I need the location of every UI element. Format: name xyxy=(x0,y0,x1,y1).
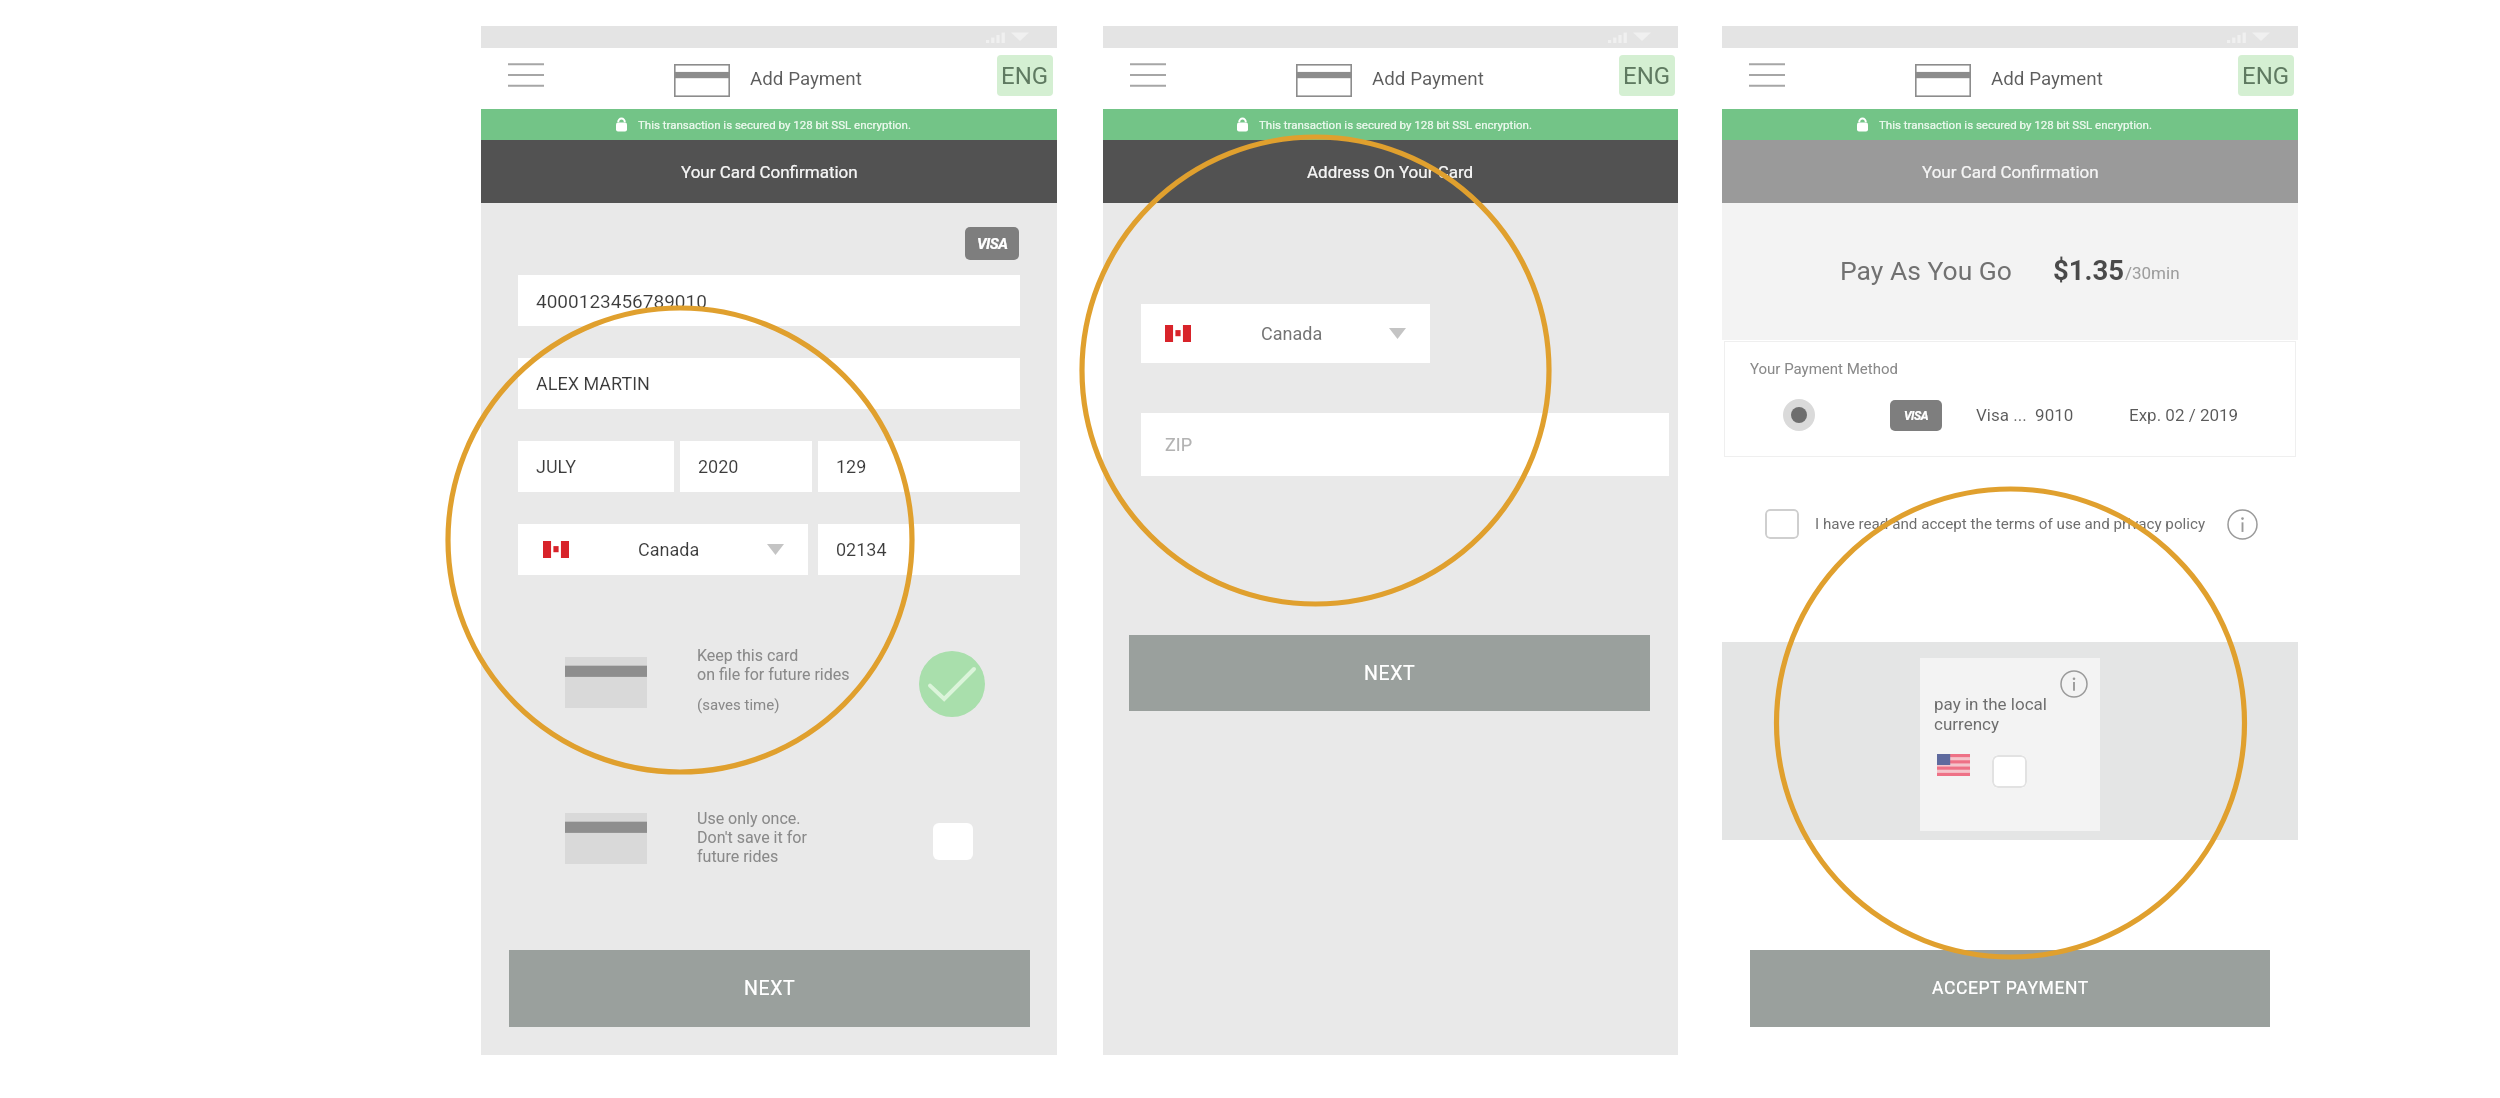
button[interactable]: JULY xyxy=(518,441,674,492)
button[interactable]: ALEX MARTIN xyxy=(518,358,1020,409)
button[interactable]: 02134 xyxy=(818,524,1020,575)
button[interactable]: 4000123456789010 xyxy=(518,275,1020,326)
staticText: ACCEPT PAYMENT xyxy=(1932,978,2089,999)
button[interactable]: Menu xyxy=(1130,63,1166,87)
staticText: Address On Your Card xyxy=(1307,162,1474,182)
button[interactable]: Use only once. xyxy=(481,803,1057,883)
button[interactable]: Keep this card xyxy=(481,643,1057,731)
button[interactable]: Canada xyxy=(518,524,808,575)
staticText: /30min xyxy=(2125,263,2180,283)
staticText: Visa ... 9010 xyxy=(1976,405,2074,425)
staticText: on file for future rides xyxy=(697,665,850,684)
button[interactable]: Pay in local currency toggle xyxy=(1992,755,2027,788)
staticText: Use only once. xyxy=(697,809,801,828)
staticText: future rides xyxy=(697,847,779,866)
button[interactable]: NEXT xyxy=(509,950,1030,1027)
staticText: Pay As You Go xyxy=(1840,255,2012,286)
staticText: 129 xyxy=(836,456,867,477)
button[interactable]: NEXT xyxy=(1129,635,1650,711)
staticText: ZIP xyxy=(1165,434,1193,455)
staticText: Don't save it for xyxy=(697,828,807,847)
staticText: $1.35 xyxy=(2053,254,2125,286)
button[interactable]: Payment card xyxy=(1296,64,1352,97)
staticText: ALEX MARTIN xyxy=(536,373,650,394)
staticText: This transaction is secured by 128 bit S… xyxy=(638,118,911,131)
button[interactable]: Payment card xyxy=(674,64,730,97)
staticText: Canada xyxy=(1261,323,1323,344)
staticText: Add Payment xyxy=(1991,68,2103,90)
staticText: VISA xyxy=(977,235,1008,253)
button[interactable]: ZIP xyxy=(1141,413,1669,476)
button[interactable]: More information xyxy=(2060,670,2088,698)
staticText: ENG xyxy=(1623,62,1671,90)
staticText: 4000123456789010 xyxy=(536,290,707,312)
button[interactable]: ENG xyxy=(1619,55,1675,96)
staticText: (saves time) xyxy=(697,696,780,714)
staticText: Your Payment Method xyxy=(1750,360,1898,378)
staticText: NEXT xyxy=(1364,662,1416,685)
staticText: 02134 xyxy=(836,539,887,560)
staticText: ENG xyxy=(1001,62,1049,90)
staticText: Canada xyxy=(638,539,700,560)
staticText: Add Payment xyxy=(750,68,862,90)
staticText: NEXT xyxy=(744,977,796,1000)
button[interactable]: More information xyxy=(2227,509,2258,540)
staticText: ENG xyxy=(2242,62,2290,90)
staticText: Your Card Confirmation xyxy=(1922,162,2099,182)
staticText: I have read and accept the terms of use … xyxy=(1815,515,2206,533)
button[interactable]: ACCEPT PAYMENT xyxy=(1750,950,2270,1027)
staticText: currency xyxy=(1934,714,1999,734)
staticText: This transaction is secured by 128 bit S… xyxy=(1259,118,1532,131)
button[interactable]: Payment card xyxy=(1915,64,1971,97)
staticText: 2020 xyxy=(698,456,739,477)
staticText: pay in the local xyxy=(1934,694,2047,714)
staticText: Keep this card xyxy=(697,646,799,665)
button[interactable]: Canada xyxy=(1141,304,1430,363)
staticText: JULY xyxy=(536,456,577,477)
button[interactable]: VISA xyxy=(1724,387,2296,443)
button[interactable]: Menu xyxy=(1749,63,1785,87)
button[interactable]: I have read and accept the terms of use … xyxy=(1722,504,2298,544)
staticText: Your Card Confirmation xyxy=(681,162,858,182)
staticText: Add Payment xyxy=(1372,68,1484,90)
button[interactable]: 129 xyxy=(818,441,1020,492)
staticText: This transaction is secured by 128 bit S… xyxy=(1879,118,2152,131)
button[interactable]: Menu xyxy=(508,63,544,87)
button[interactable]: 2020 xyxy=(680,441,812,492)
button[interactable]: ENG xyxy=(2238,55,2294,96)
staticText: Exp. 02 / 2019 xyxy=(2129,405,2239,425)
button[interactable]: ENG xyxy=(997,55,1053,96)
staticText: VISA xyxy=(1904,409,1928,423)
